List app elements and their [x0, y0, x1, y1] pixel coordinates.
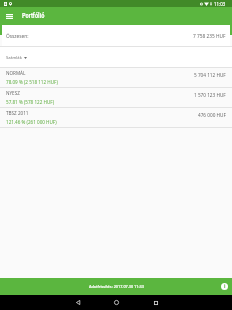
- button[interactable]: Számlák: [0, 47, 232, 67]
- staticText: 5 704 112 HUF: [194, 72, 226, 78]
- staticText: Számlák: [6, 55, 22, 61]
- button[interactable]: NYESZ: [0, 88, 232, 107]
- staticText: 7 758 235 HUF: [193, 33, 226, 40]
- button[interactable]: Back: [58, 295, 97, 310]
- staticText: 57.81 % (578 122 HUF): [6, 99, 55, 105]
- button[interactable]: Info: [221, 283, 228, 290]
- staticText: 1 570 123 HUF: [194, 92, 226, 98]
- button[interactable]: Navigation menu: [0, 7, 19, 25]
- button[interactable]: Home: [97, 295, 136, 310]
- staticText: Összesen:: [6, 33, 29, 40]
- staticText: 476 000 HUF: [198, 112, 226, 118]
- staticText: i: [224, 283, 226, 290]
- staticText: NYESZ: [6, 90, 20, 96]
- staticText: NORMÁL: [6, 70, 26, 76]
- staticText: 11:03: [214, 1, 226, 7]
- staticText: 121.46 % (261 000 HUF): [6, 119, 57, 125]
- button[interactable]: NORMÁL: [0, 68, 232, 87]
- staticText: Adatfrissítés: 2017.07.30 11:33: [89, 284, 144, 289]
- button[interactable]: Recent apps: [136, 295, 175, 310]
- button[interactable]: Összesen:: [2, 25, 230, 46]
- staticText: TBSZ 2011: [6, 110, 29, 116]
- staticText: Portfólió: [22, 12, 45, 20]
- staticText: 78.09 % (2 518 112 HUF): [6, 79, 58, 85]
- button[interactable]: TBSZ 2011: [0, 108, 232, 127]
